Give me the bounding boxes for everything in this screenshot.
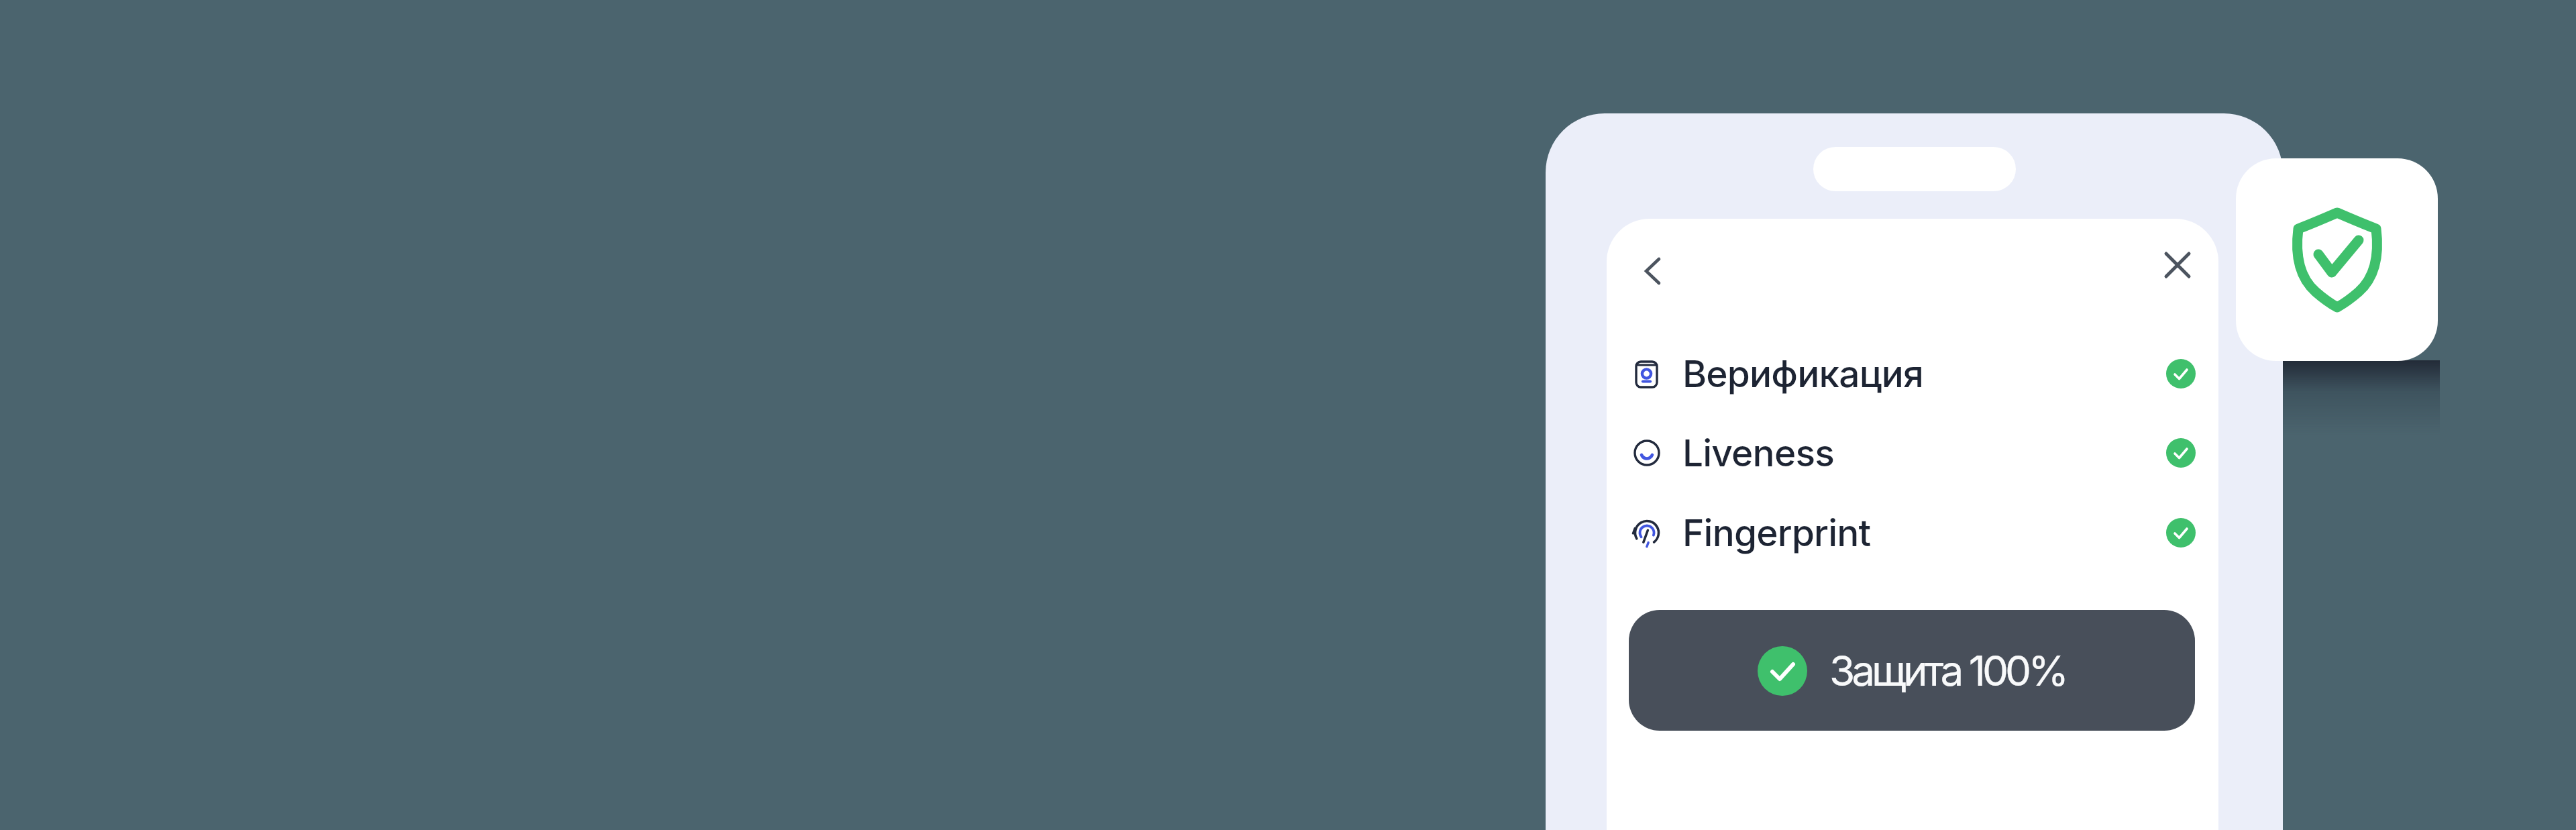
button[interactable]: Защита 100% [1629,610,2195,731]
button[interactable]: Liveness [1620,423,2197,483]
button[interactable] [2236,158,2438,361]
button[interactable]: Верификация [1620,344,2197,404]
button[interactable] [2157,245,2198,285]
staticText: Верификация [1682,352,1924,397]
button[interactable] [1633,251,1673,291]
staticText: Защита 100% [1829,645,2066,696]
button[interactable]: Fingerprint [1620,503,2197,563]
staticText: Fingerprint [1682,511,1871,556]
staticText: Liveness [1682,431,1835,476]
